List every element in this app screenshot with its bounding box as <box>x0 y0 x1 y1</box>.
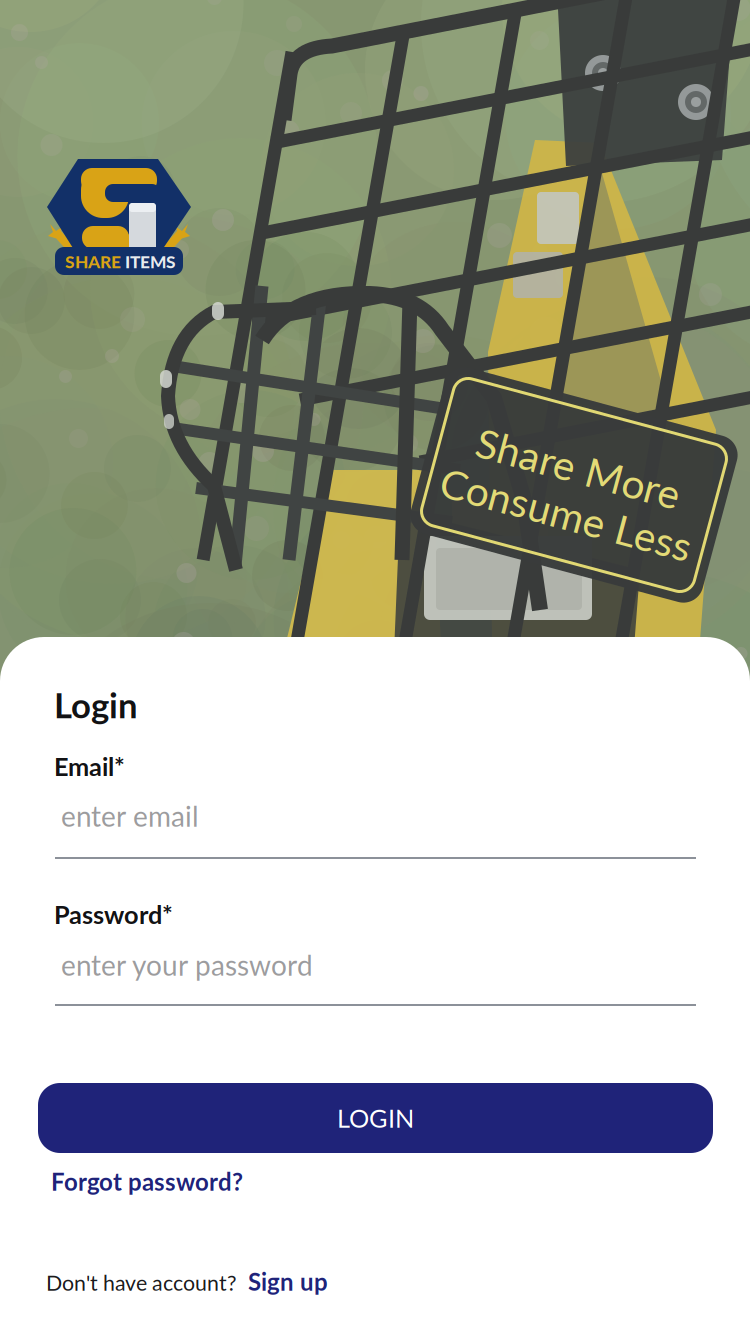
staticText: enter your password <box>61 948 313 982</box>
button[interactable]: Sign up <box>248 1267 328 1296</box>
staticText: Login <box>54 684 138 726</box>
staticText: LOGIN <box>337 1103 414 1133</box>
staticText: Share More <box>469 442 679 492</box>
staticText: Consume Less <box>444 490 703 540</box>
staticText: Password* <box>54 899 173 929</box>
staticText: enter email <box>61 799 199 833</box>
button[interactable]: Forgot password? <box>49 1163 245 1200</box>
staticText: SHARE <box>65 251 121 272</box>
staticText: Don't have account? <box>46 1270 237 1295</box>
staticText: ITEMS <box>125 251 176 272</box>
staticText: Sign up <box>248 1267 328 1296</box>
staticText: Forgot password? <box>51 1167 243 1196</box>
button[interactable]: LOGIN <box>38 1083 713 1153</box>
staticText: Email* <box>54 751 125 781</box>
